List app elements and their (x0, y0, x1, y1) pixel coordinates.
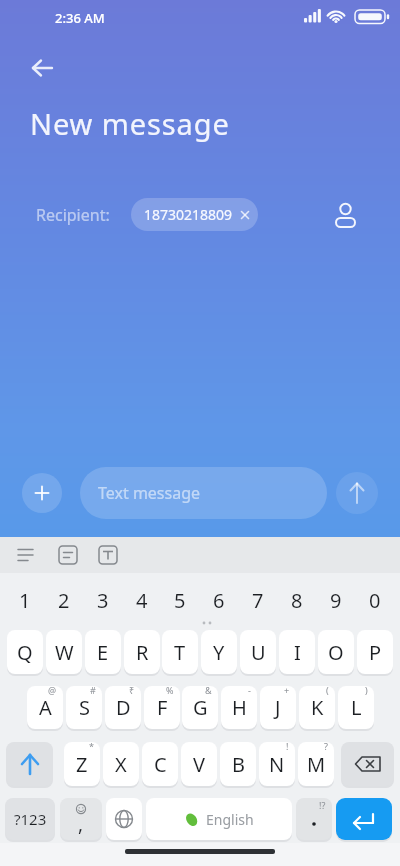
staticText: @ (48, 684, 57, 696)
button[interactable] (336, 472, 378, 514)
button[interactable] (6, 742, 53, 786)
staticText: Text message (98, 482, 201, 504)
button[interactable] (22, 54, 62, 82)
staticText: 0 (369, 587, 381, 614)
button[interactable]: ?123 (5, 798, 55, 840)
button[interactable]: I (279, 630, 315, 674)
button[interactable]: W (46, 630, 82, 674)
staticText: 7 (252, 587, 264, 614)
staticText: ( (326, 684, 329, 696)
button[interactable]: 1 (7, 578, 43, 622)
staticText: K (311, 694, 324, 721)
button[interactable]: Q (7, 630, 43, 674)
button[interactable]: P (357, 630, 393, 674)
button[interactable]: S (66, 686, 102, 729)
button[interactable]: Text message (80, 467, 327, 519)
staticText: T (174, 639, 186, 666)
staticText: English (206, 810, 254, 829)
button[interactable]: O (318, 630, 354, 674)
button[interactable]: Y (201, 630, 237, 674)
button[interactable]: T (162, 630, 198, 674)
staticText: 4 (136, 587, 148, 614)
staticText: R (136, 639, 149, 666)
button[interactable]: K (299, 686, 335, 729)
staticText: ₹ (129, 684, 135, 696)
staticText: 8 (291, 587, 303, 614)
staticText: 6 (213, 587, 225, 614)
staticText: G (193, 694, 208, 721)
staticText: B (232, 751, 245, 778)
button[interactable]: !? (296, 798, 332, 840)
button[interactable]: C (142, 742, 178, 786)
button[interactable]: U (240, 630, 276, 674)
button[interactable]: 5 (162, 578, 198, 622)
button[interactable]: G (182, 686, 218, 729)
staticText: 9 (330, 587, 342, 614)
staticText: W (55, 639, 74, 666)
staticText: D (116, 694, 131, 721)
staticText: ? (324, 740, 328, 752)
button[interactable] (330, 198, 364, 232)
button[interactable]: D (105, 686, 141, 729)
button[interactable] (106, 798, 142, 840)
button[interactable]: X (103, 742, 139, 786)
staticText: C (154, 751, 167, 778)
button[interactable] (0, 537, 44, 573)
button[interactable] (84, 537, 124, 573)
button[interactable]: 18730218809 (131, 198, 258, 231)
button[interactable]: 0 (357, 578, 393, 622)
button[interactable] (22, 473, 62, 513)
staticText: 1 (19, 587, 31, 614)
staticText: Q (17, 639, 33, 666)
button[interactable]: R (124, 630, 160, 674)
button[interactable]: 3 (85, 578, 121, 622)
button[interactable]: 2 (46, 578, 82, 622)
staticText: J (275, 694, 281, 721)
staticText: L (351, 694, 362, 721)
staticText: Y (213, 639, 225, 666)
staticText: !? (319, 799, 326, 811)
button[interactable]: L (338, 686, 374, 729)
button[interactable]: M (298, 742, 334, 786)
button[interactable]: F (144, 686, 180, 729)
button[interactable]: A (27, 686, 63, 729)
button[interactable]: V (181, 742, 217, 786)
staticText: F (157, 694, 168, 721)
staticText: 2:36 AM (55, 9, 105, 27)
button[interactable]: H (221, 686, 257, 729)
staticText: I (294, 639, 301, 666)
button[interactable]: 8 (279, 578, 315, 622)
staticText: New message (30, 104, 230, 143)
button[interactable]: B (220, 742, 256, 786)
staticText: 5 (174, 587, 186, 614)
staticText: ?123 (14, 809, 47, 829)
button[interactable]: 6 (201, 578, 237, 622)
button[interactable]: , (60, 798, 102, 840)
staticText: P (369, 639, 382, 666)
staticText: U (251, 639, 266, 666)
staticText: # (90, 684, 96, 696)
staticText: M (307, 751, 326, 778)
button[interactable]: 4 (124, 578, 160, 622)
staticText: H (232, 694, 247, 721)
button[interactable]: Z (64, 742, 100, 786)
button[interactable] (44, 537, 84, 573)
button[interactable]: English (146, 798, 292, 840)
staticText: + (284, 684, 290, 696)
staticText: % (166, 684, 174, 696)
button[interactable]: N (259, 742, 295, 786)
staticText: - (248, 684, 251, 696)
staticText: ! (286, 740, 289, 752)
staticText: , (78, 811, 84, 837)
button[interactable] (341, 742, 394, 786)
staticText: E (97, 639, 109, 666)
button[interactable]: E (85, 630, 121, 674)
staticText: N (269, 751, 285, 778)
button[interactable]: 9 (318, 578, 354, 622)
button[interactable] (336, 798, 392, 840)
button[interactable]: J (260, 686, 296, 729)
button[interactable]: 7 (240, 578, 276, 622)
staticText: 3 (97, 587, 109, 614)
staticText: 18730218809 (144, 205, 233, 224)
staticText: * (89, 740, 94, 752)
